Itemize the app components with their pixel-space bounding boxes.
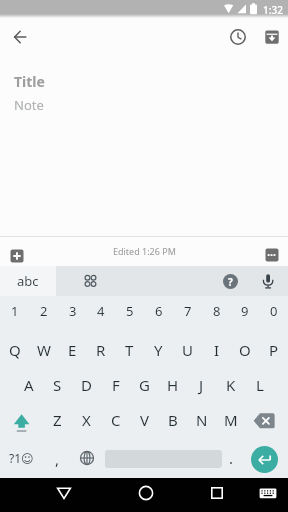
staticText: A — [24, 375, 34, 395]
button[interactable]: G — [130, 367, 159, 403]
staticText: ? — [228, 275, 233, 289]
button[interactable]: U — [173, 332, 202, 368]
button[interactable] — [4, 243, 30, 269]
staticText: K — [226, 375, 236, 395]
button[interactable]: 9 — [230, 294, 259, 328]
staticText: 4 — [97, 302, 105, 320]
button[interactable]: Q — [0, 332, 29, 368]
button[interactable]: 4 — [86, 294, 115, 328]
button[interactable]: 8 — [202, 294, 231, 328]
button[interactable] — [255, 268, 281, 294]
button[interactable]: X — [72, 402, 101, 438]
button[interactable] — [131, 478, 161, 508]
button[interactable]: 0 — [259, 294, 288, 328]
button[interactable] — [49, 478, 79, 508]
button[interactable]: I — [202, 332, 231, 368]
button[interactable]: J — [187, 367, 216, 403]
button[interactable]: ? — [217, 268, 243, 294]
staticText: abc — [17, 272, 39, 290]
staticText: S — [53, 375, 62, 395]
staticText: D — [81, 375, 92, 395]
staticText: J — [199, 375, 204, 395]
button[interactable]: S — [43, 367, 72, 403]
button[interactable]: Z — [43, 402, 72, 438]
staticText: X — [82, 410, 91, 430]
button[interactable]: C — [101, 402, 130, 438]
staticText: L — [256, 375, 264, 395]
staticText: B — [168, 410, 178, 430]
button[interactable] — [258, 23, 286, 51]
button[interactable]: 7 — [173, 294, 202, 328]
button[interactable] — [72, 438, 101, 478]
button[interactable]: W — [29, 332, 58, 368]
staticText: 5 — [126, 302, 134, 320]
button[interactable]: M — [216, 402, 245, 438]
staticText: 1 — [11, 302, 19, 320]
button[interactable]: R — [86, 332, 115, 368]
staticText: C — [111, 410, 121, 430]
staticText: 8 — [213, 302, 221, 320]
staticText: M — [224, 410, 238, 430]
button[interactable]: 3 — [58, 294, 87, 328]
staticText: 1:32 — [263, 3, 283, 17]
button[interactable]: A — [14, 367, 43, 403]
staticText: R — [96, 340, 106, 360]
staticText: H — [167, 375, 179, 395]
button[interactable]: 5 — [115, 294, 144, 328]
staticText: N — [196, 410, 208, 430]
staticText: . — [229, 448, 234, 468]
button[interactable] — [0, 402, 43, 438]
button[interactable]: L — [245, 367, 274, 403]
button[interactable]: V — [130, 402, 159, 438]
button[interactable]: K — [216, 367, 245, 403]
button[interactable]: 1 — [0, 294, 29, 328]
staticText: Z — [53, 410, 62, 430]
staticText: O — [239, 340, 251, 360]
staticText: U — [182, 340, 193, 360]
button[interactable] — [5, 22, 35, 52]
staticText: 2 — [40, 302, 48, 320]
button[interactable] — [242, 402, 285, 438]
staticText: Q — [9, 340, 21, 360]
staticText: Y — [154, 340, 163, 360]
staticText: , — [55, 449, 60, 469]
staticText: G — [139, 375, 150, 395]
button[interactable]: O — [230, 332, 259, 368]
staticText: E — [68, 340, 77, 360]
button[interactable]: abc — [0, 266, 56, 296]
button[interactable] — [259, 242, 285, 268]
staticText: 7 — [184, 302, 192, 320]
button[interactable]: P — [259, 332, 288, 368]
staticText: Edited 1:26 PM — [113, 245, 176, 257]
button[interactable]: E — [58, 332, 87, 368]
button[interactable]: T — [115, 332, 144, 368]
staticText: ?1☺ — [9, 450, 34, 466]
button[interactable]: ?1☺ — [0, 438, 43, 478]
button[interactable]: 6 — [144, 294, 173, 328]
staticText: I — [214, 340, 220, 360]
staticText: 9 — [241, 302, 249, 320]
button[interactable] — [251, 446, 278, 473]
staticText: W — [37, 340, 51, 360]
button[interactable]: Note — [14, 96, 44, 114]
button[interactable]: Y — [144, 332, 173, 368]
button[interactable] — [253, 478, 283, 508]
staticText: V — [140, 410, 150, 430]
button[interactable]: 2 — [29, 294, 58, 328]
button[interactable]: , — [43, 439, 72, 479]
button[interactable]: B — [158, 402, 187, 438]
staticText: T — [125, 340, 134, 360]
button[interactable]: F — [101, 367, 130, 403]
button[interactable] — [202, 478, 232, 508]
button[interactable] — [76, 266, 106, 296]
button[interactable]: D — [72, 367, 101, 403]
button[interactable] — [224, 23, 252, 51]
button[interactable]: N — [187, 402, 216, 438]
staticText: 6 — [155, 302, 163, 320]
staticText: P — [269, 340, 279, 360]
button[interactable]: H — [158, 367, 187, 403]
button[interactable]: . — [217, 438, 246, 478]
staticText: F — [112, 375, 120, 395]
button[interactable]: Title — [14, 72, 45, 91]
